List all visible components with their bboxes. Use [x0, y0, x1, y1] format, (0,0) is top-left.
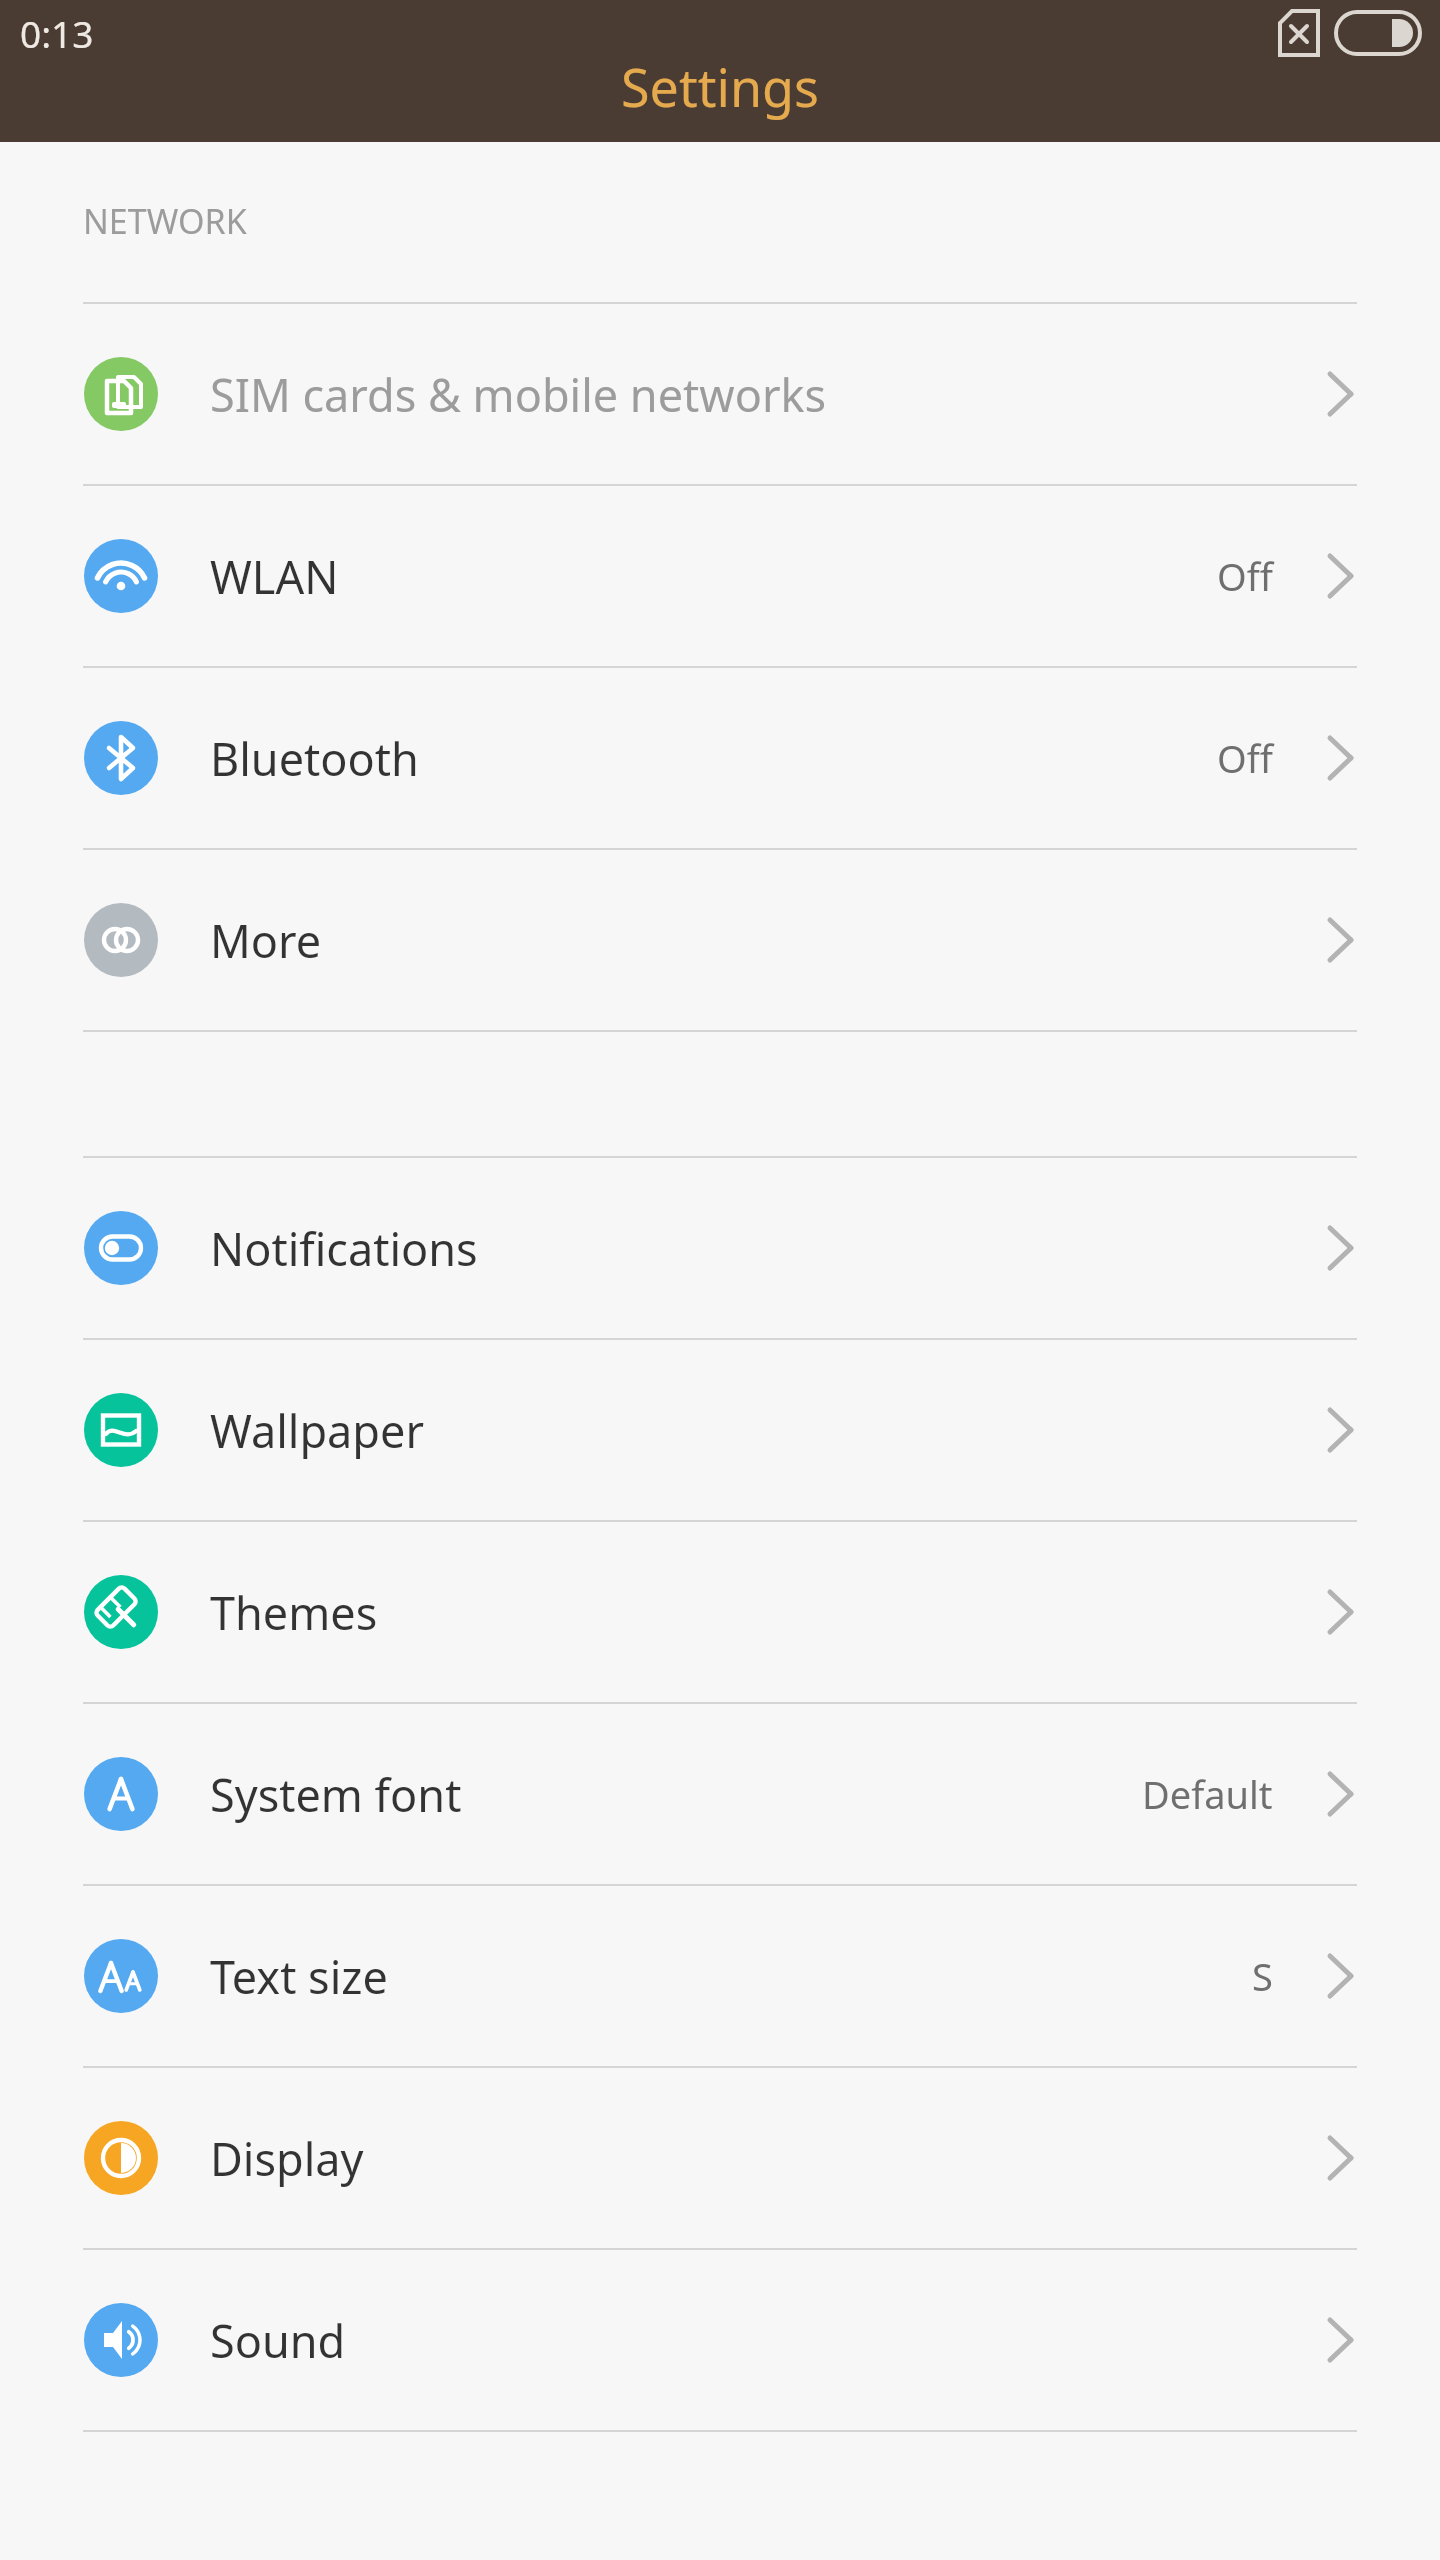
staticText: Text size	[210, 1946, 388, 2007]
button[interactable]: SIM cards & mobile networks	[0, 304, 1440, 484]
staticText: SIM cards & mobile networks	[210, 364, 827, 425]
button[interactable]: Notifications	[0, 1158, 1440, 1338]
staticText: Default	[1142, 1768, 1273, 1820]
button[interactable]: Bluetooth	[0, 668, 1440, 848]
staticText: Off	[1217, 550, 1273, 602]
button[interactable]: Wallpaper	[0, 1340, 1440, 1520]
staticText: Bluetooth	[210, 728, 419, 789]
staticText: Display	[210, 2128, 364, 2189]
staticText: 0:13	[20, 8, 94, 58]
button[interactable]: More	[0, 850, 1440, 1030]
staticText: S	[1252, 1950, 1273, 2002]
button[interactable]: Themes	[0, 1522, 1440, 1702]
button[interactable]: Text size	[0, 1886, 1440, 2066]
staticText: System font	[210, 1764, 462, 1825]
staticText: WLAN	[210, 546, 339, 607]
other: Status icons	[1270, 12, 1430, 54]
staticText: Off	[1217, 732, 1273, 784]
staticText: Wallpaper	[210, 1400, 424, 1461]
button[interactable]: WLAN	[0, 486, 1440, 666]
button[interactable]: System font	[0, 1704, 1440, 1884]
staticText: NETWORK	[83, 198, 247, 244]
staticText: Notifications	[210, 1218, 478, 1279]
button[interactable]: Sound	[0, 2250, 1440, 2430]
staticText: Settings	[621, 51, 819, 122]
button[interactable]: Display	[0, 2068, 1440, 2248]
staticText: More	[210, 910, 322, 971]
staticText: Sound	[210, 2310, 346, 2371]
staticText: Themes	[210, 1582, 378, 1643]
